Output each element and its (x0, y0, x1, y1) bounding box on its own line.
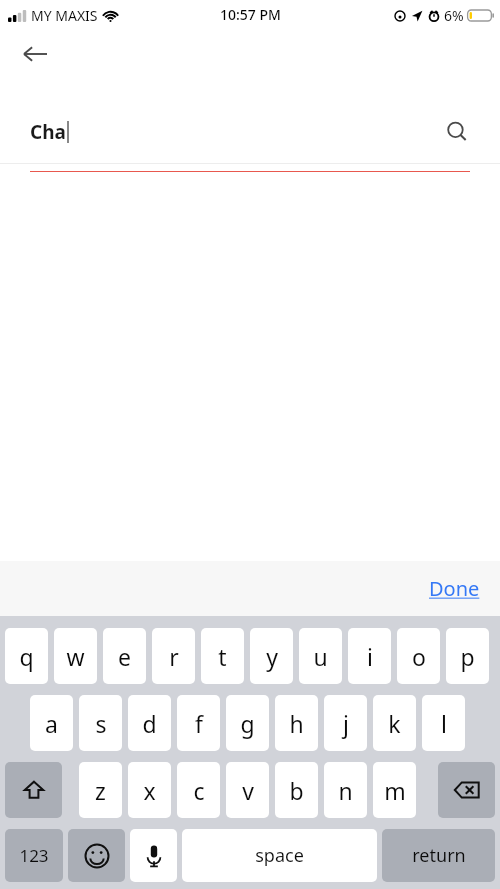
staticText: c (193, 775, 205, 806)
staticText: 10:57 PM (220, 5, 281, 24)
staticText: Cha (30, 119, 66, 145)
button[interactable]: Done (423, 571, 486, 606)
button[interactable]: n (324, 762, 367, 818)
staticText: m (384, 775, 406, 806)
button[interactable]: return (382, 829, 495, 882)
staticText: Done (429, 575, 480, 602)
staticText: o (412, 641, 426, 672)
staticText: n (338, 775, 353, 806)
staticText: y (266, 641, 278, 672)
button[interactable]: d (128, 695, 171, 751)
button[interactable]: w (54, 628, 97, 684)
staticText: 123 (19, 844, 49, 867)
button[interactable]: z (79, 762, 122, 818)
staticText: x (143, 775, 156, 806)
button[interactable]: f (177, 695, 220, 751)
staticText: s (95, 708, 107, 739)
staticText: e (118, 641, 131, 672)
button[interactable]: Emoji (68, 829, 125, 882)
staticText: p (460, 641, 475, 672)
button[interactable]: r (152, 628, 195, 684)
staticText: b (289, 775, 304, 806)
button[interactable]: s (79, 695, 122, 751)
staticText: z (95, 775, 106, 806)
button[interactable]: p (446, 628, 489, 684)
staticText: return (412, 843, 466, 868)
button[interactable]: i (348, 628, 391, 684)
button[interactable]: o (397, 628, 440, 684)
button[interactable]: g (226, 695, 269, 751)
staticText: MY MAXIS (31, 6, 98, 25)
button[interactable]: b (275, 762, 318, 818)
staticText: g (240, 708, 255, 739)
button[interactable]: v (226, 762, 269, 818)
staticText: a (45, 708, 58, 739)
button[interactable]: a (30, 695, 73, 751)
staticText: 6% (444, 6, 464, 25)
staticText: f (195, 708, 203, 739)
button[interactable]: Backspace (438, 762, 495, 818)
staticText: space (255, 843, 304, 868)
button[interactable]: y (250, 628, 293, 684)
staticText: d (142, 708, 157, 739)
staticText: i (367, 641, 373, 672)
button[interactable]: 123 (5, 829, 63, 882)
staticText: t (218, 641, 227, 672)
button[interactable]: l (422, 695, 465, 751)
button[interactable]: Back (16, 35, 54, 73)
button[interactable]: c (177, 762, 220, 818)
staticText: r (169, 641, 179, 672)
staticText: j (343, 708, 349, 739)
button[interactable]: x (128, 762, 171, 818)
staticText: l (441, 708, 447, 739)
button[interactable]: space (182, 829, 377, 882)
button[interactable]: Shift (5, 762, 62, 818)
staticText: h (289, 708, 304, 739)
staticText: v (242, 775, 254, 806)
button[interactable]: m (373, 762, 416, 818)
button[interactable]: h (275, 695, 318, 751)
button[interactable]: k (373, 695, 416, 751)
staticText: k (388, 708, 401, 739)
button[interactable]: q (5, 628, 48, 684)
button[interactable]: Dictation (130, 829, 177, 882)
button[interactable]: t (201, 628, 244, 684)
staticText: u (313, 641, 328, 672)
button[interactable]: e (103, 628, 146, 684)
button[interactable]: Search (440, 115, 474, 149)
staticText: w (66, 641, 85, 672)
button[interactable]: j (324, 695, 367, 751)
staticText: q (19, 641, 34, 672)
button[interactable]: u (299, 628, 342, 684)
